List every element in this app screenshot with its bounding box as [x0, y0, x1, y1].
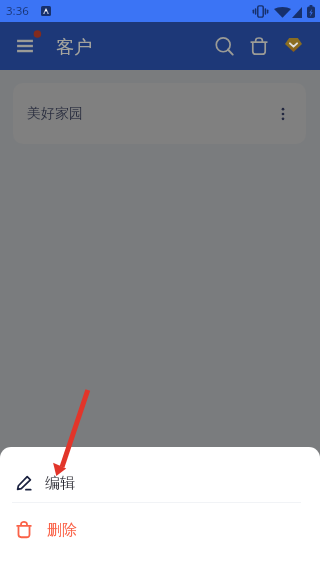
button[interactable]: Search	[209, 31, 241, 63]
staticText: 删除	[47, 521, 77, 540]
staticText: 客户	[56, 36, 92, 59]
button[interactable]: 美好家园	[13, 83, 306, 144]
staticText: 美好家园	[27, 105, 83, 123]
staticText: 编辑	[45, 474, 75, 493]
button[interactable]: 编辑	[0, 447, 320, 502]
button[interactable]: 删除	[0, 503, 320, 568]
button[interactable]: More options	[269, 100, 297, 128]
button[interactable]: Delete	[243, 30, 275, 62]
button[interactable]: Membership	[277, 29, 309, 61]
button[interactable]: Open navigation menu	[7, 28, 43, 64]
staticText: 3:36	[6, 3, 29, 19]
